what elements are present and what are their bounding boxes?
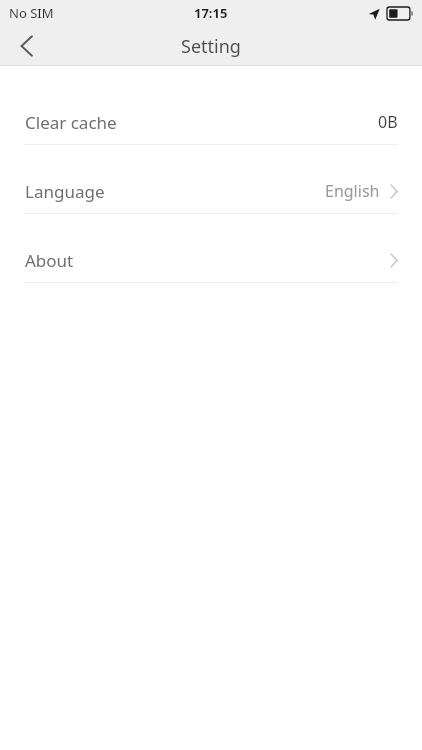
button[interactable]: About xyxy=(0,238,422,307)
staticText: About xyxy=(25,249,74,272)
staticText: Setting xyxy=(181,34,241,59)
staticText: 17:15 xyxy=(194,4,228,22)
staticText: Clear cache xyxy=(25,111,117,134)
button[interactable]: Back xyxy=(0,26,52,66)
button[interactable]: Language xyxy=(0,169,422,238)
button[interactable]: Clear cache xyxy=(0,100,422,169)
staticText: English xyxy=(325,180,380,202)
staticText: No SIM xyxy=(9,4,54,22)
staticText: Language xyxy=(25,180,105,203)
staticText: 0B xyxy=(378,111,398,133)
